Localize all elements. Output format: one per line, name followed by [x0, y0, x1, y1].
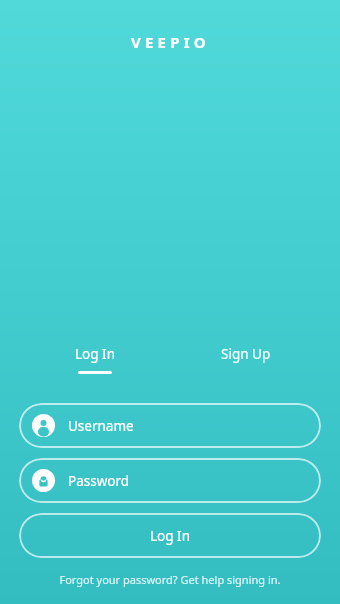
button[interactable]: Username [19, 403, 321, 448]
button[interactable]: Log In [19, 513, 321, 558]
staticText: Log In [75, 345, 115, 363]
staticText: Log In [150, 527, 190, 545]
staticText: VEEPIO [131, 32, 210, 52]
staticText: Password [68, 472, 130, 490]
button[interactable]: Forgot your password? Get help signing i… [0, 569, 340, 590]
staticText: Sign Up [221, 345, 271, 363]
button[interactable]: Sign Up [170, 345, 321, 374]
button[interactable]: Log In [19, 345, 170, 374]
staticText: Forgot your password? Get help signing i… [59, 572, 281, 587]
staticText: Username [68, 417, 134, 435]
button[interactable]: Password [19, 458, 321, 503]
